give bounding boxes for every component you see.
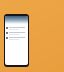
- button[interactable]: [5, 31, 28, 35]
- button[interactable]: [5, 26, 28, 30]
- button[interactable]: [5, 36, 28, 40]
